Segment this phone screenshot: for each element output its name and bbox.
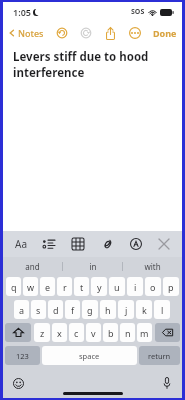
staticText: j xyxy=(125,304,128,316)
button[interactable]: s xyxy=(31,300,46,319)
button[interactable]: h xyxy=(100,300,116,319)
staticText: x xyxy=(57,327,62,339)
button[interactable]: Text format xyxy=(10,233,32,255)
button[interactable]: Close keyboard xyxy=(153,233,175,255)
button[interactable]: q xyxy=(6,277,21,296)
staticText: Aa xyxy=(15,237,27,251)
button[interactable]: k xyxy=(136,300,152,319)
button[interactable]: More options xyxy=(125,23,145,43)
staticText: y xyxy=(97,281,102,293)
staticText: 1:05 xyxy=(13,6,31,18)
button[interactable]: i xyxy=(127,277,143,296)
staticText: u xyxy=(114,281,120,293)
button[interactable]: Redo xyxy=(76,23,96,43)
button[interactable]: Done xyxy=(148,24,182,42)
button[interactable]: t xyxy=(74,277,89,296)
staticText: f xyxy=(71,304,75,316)
staticText: Done xyxy=(153,27,177,39)
button[interactable]: m xyxy=(137,323,152,342)
staticText: n xyxy=(125,327,131,339)
button[interactable]: Checklist xyxy=(38,233,60,255)
button[interactable]: f xyxy=(65,300,80,319)
staticText: r xyxy=(63,281,67,293)
staticText: o xyxy=(150,281,156,293)
staticText: v xyxy=(91,327,96,339)
button[interactable]: Dictation xyxy=(158,374,176,392)
button[interactable]: 123 xyxy=(5,346,40,365)
staticText: Notes xyxy=(18,27,44,39)
button[interactable]: Shift xyxy=(5,323,31,342)
staticText: m xyxy=(140,327,149,339)
button[interactable]: o xyxy=(145,277,161,296)
button[interactable]: and xyxy=(3,257,62,275)
button[interactable]: Delete xyxy=(155,323,180,342)
staticText: h xyxy=(105,304,111,316)
button[interactable]: y xyxy=(91,277,107,296)
button[interactable]: Emoji xyxy=(9,374,27,392)
staticText: p xyxy=(168,281,174,293)
staticText: a xyxy=(19,304,25,316)
button[interactable]: a xyxy=(14,300,29,319)
staticText: c xyxy=(74,327,79,339)
button[interactable]: Attach xyxy=(96,233,118,255)
button[interactable]: with xyxy=(123,257,182,275)
staticText: and xyxy=(25,261,40,272)
staticText: e xyxy=(45,281,51,293)
button[interactable]: r xyxy=(57,277,72,296)
button[interactable]: Markup xyxy=(125,233,147,255)
button[interactable]: l xyxy=(154,300,170,319)
staticText: SOS xyxy=(131,7,145,17)
button[interactable]: j xyxy=(118,300,134,319)
button[interactable]: e xyxy=(40,277,55,296)
button[interactable]: Table xyxy=(67,233,89,255)
staticText: return xyxy=(148,351,171,361)
staticText: b xyxy=(108,327,114,339)
staticText: 123 xyxy=(16,351,29,361)
staticText: with xyxy=(144,261,161,272)
staticText: d xyxy=(53,304,59,316)
button[interactable]: z xyxy=(34,323,50,342)
button[interactable]: w xyxy=(23,277,38,296)
button[interactable]: p xyxy=(163,277,179,296)
staticText: s xyxy=(36,304,41,316)
button[interactable]: b xyxy=(103,323,118,342)
button[interactable]: space xyxy=(42,346,137,365)
staticText: t xyxy=(80,281,84,293)
staticText: space xyxy=(79,351,100,361)
button[interactable]: Share xyxy=(100,23,120,43)
staticText: g xyxy=(87,304,93,316)
button[interactable]: Undo xyxy=(52,23,72,43)
staticText: w xyxy=(27,281,35,293)
staticText: Levers stiff due to hood interference xyxy=(13,49,149,80)
staticText: l xyxy=(161,304,164,316)
staticText: z xyxy=(40,327,45,339)
button[interactable]: v xyxy=(86,323,101,342)
button[interactable]: d xyxy=(48,300,63,319)
staticText: i xyxy=(134,281,137,293)
button[interactable]: u xyxy=(109,277,125,296)
button[interactable]: g xyxy=(82,300,98,319)
button[interactable]: c xyxy=(69,323,84,342)
staticText: q xyxy=(11,281,17,293)
staticText: in xyxy=(89,261,97,272)
button[interactable]: Notes xyxy=(3,25,48,41)
button[interactable]: x xyxy=(52,323,67,342)
button[interactable]: in xyxy=(63,257,122,275)
button[interactable]: return xyxy=(139,346,180,365)
staticText: k xyxy=(142,304,147,316)
button[interactable]: n xyxy=(120,323,135,342)
